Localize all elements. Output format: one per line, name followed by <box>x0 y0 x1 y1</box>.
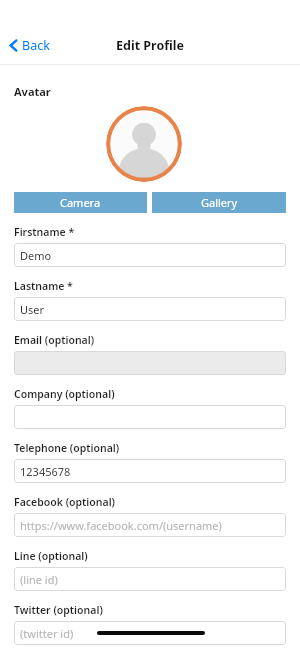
staticText: User <box>20 302 45 317</box>
button[interactable]: Demo <box>14 243 286 267</box>
button[interactable]: Camera <box>14 192 147 213</box>
button[interactable]: 12345678 <box>14 459 286 483</box>
button[interactable]: (line id) <box>14 567 286 591</box>
staticText: Telephone (optional) <box>14 441 120 455</box>
button[interactable] <box>14 405 286 429</box>
button[interactable]: Gallery <box>152 192 286 213</box>
staticText: Camera <box>60 195 101 210</box>
staticText: Line (optional) <box>14 549 88 563</box>
staticText: Twitter (optional) <box>14 603 103 617</box>
staticText: Demo <box>20 248 52 263</box>
staticText: Firstname * <box>14 225 75 239</box>
button[interactable]: Back <box>7 33 52 58</box>
staticText: Avatar <box>14 84 51 99</box>
staticText: 12345678 <box>20 464 71 479</box>
staticText: https://www.facebook.com/(username) <box>20 518 222 533</box>
staticText: Back <box>22 37 50 54</box>
staticText: Edit Profile <box>116 37 184 54</box>
staticText: (twitter id) <box>20 626 74 641</box>
button[interactable]: User <box>14 297 286 321</box>
staticText: Email (optional) <box>14 333 95 347</box>
staticText: Facebook (optional) <box>14 495 116 509</box>
button[interactable]: https://www.facebook.com/(username) <box>14 513 286 537</box>
staticText: Gallery <box>201 195 238 210</box>
staticText: Lastname * <box>14 279 73 293</box>
button[interactable]: (twitter id) <box>14 621 286 645</box>
button[interactable] <box>14 351 286 375</box>
button[interactable]: Avatar photo <box>106 106 182 182</box>
staticText: (line id) <box>20 572 58 587</box>
staticText: Company (optional) <box>14 387 115 401</box>
